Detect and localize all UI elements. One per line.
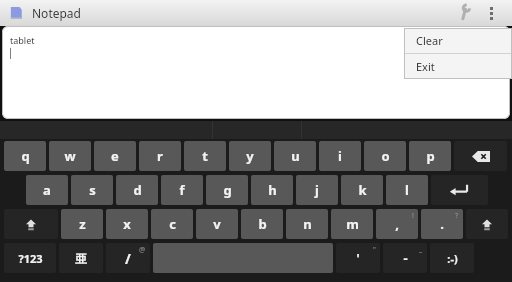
staticText: v: [213, 215, 221, 233]
staticText: n: [303, 215, 312, 233]
staticText: @: [139, 245, 146, 255]
button[interactable]: d: [116, 175, 158, 205]
button[interactable]: :-): [430, 243, 474, 273]
staticText: r: [157, 147, 163, 165]
staticText: ': [356, 250, 360, 266]
staticText: :-): [447, 251, 458, 266]
button[interactable]: p: [409, 141, 451, 171]
staticText: tablet: [10, 34, 35, 46]
staticText: 亜: [75, 251, 87, 266]
staticText: y: [246, 147, 254, 165]
staticText: a: [43, 181, 51, 199]
staticText: /: [125, 249, 131, 268]
button[interactable]: Settings: [452, 0, 478, 26]
staticText: z: [79, 215, 86, 233]
staticText: d: [133, 181, 142, 199]
button[interactable]: tablet: [2, 26, 510, 119]
staticText: b: [258, 215, 267, 233]
button[interactable]: ?123: [4, 243, 56, 273]
button[interactable]: Shift: [466, 209, 508, 239]
button[interactable]: ': [336, 243, 380, 273]
button[interactable]: f: [161, 175, 203, 205]
button[interactable]: k: [341, 175, 383, 205]
staticText: e: [111, 147, 119, 165]
button[interactable]: x: [106, 209, 148, 239]
button[interactable]: Enter: [431, 175, 488, 205]
staticText: h: [268, 181, 277, 199]
staticText: ,: [395, 215, 399, 233]
button[interactable]: -: [383, 243, 427, 273]
button[interactable]: v: [196, 209, 238, 239]
staticText: _: [419, 245, 423, 255]
staticText: x: [123, 215, 131, 233]
staticText: -: [403, 249, 408, 267]
staticText: t: [202, 147, 208, 165]
staticText: ?123: [18, 251, 43, 266]
button[interactable]: j: [296, 175, 338, 205]
staticText: m: [346, 215, 359, 233]
staticText: j: [315, 181, 319, 199]
button[interactable]: u: [274, 141, 316, 171]
staticText: o: [381, 147, 390, 165]
button[interactable]: n: [286, 209, 328, 239]
staticText: k: [358, 181, 367, 199]
button[interactable]: q: [4, 141, 46, 171]
button[interactable]: b: [241, 209, 283, 239]
staticText: p: [426, 147, 435, 165]
staticText: !: [412, 211, 414, 221]
button[interactable]: /: [106, 243, 150, 273]
button[interactable]: o: [364, 141, 406, 171]
button[interactable]: g: [206, 175, 248, 205]
button[interactable]: z: [61, 209, 103, 239]
button[interactable]: Shift: [4, 209, 58, 239]
button[interactable]: Exit: [404, 54, 512, 79]
button[interactable]: More options: [478, 0, 504, 26]
staticText: ?: [455, 211, 459, 221]
button[interactable]: c: [151, 209, 193, 239]
button[interactable]: t: [184, 141, 226, 171]
staticText: .: [440, 215, 444, 233]
button[interactable]: w: [49, 141, 91, 171]
button[interactable]: Clear: [404, 28, 512, 53]
staticText: i: [338, 147, 342, 165]
button[interactable]: i: [319, 141, 361, 171]
button[interactable]: Input language: [59, 243, 103, 273]
staticText: s: [89, 181, 96, 199]
button[interactable]: m: [331, 209, 373, 239]
button[interactable]: s: [71, 175, 113, 205]
button[interactable]: h: [251, 175, 293, 205]
button[interactable]: a: [26, 175, 68, 205]
staticText: Exit: [416, 59, 435, 74]
staticText: Notepad: [32, 5, 81, 21]
button[interactable]: l: [386, 175, 428, 205]
staticText: l: [405, 181, 409, 199]
staticText: u: [291, 147, 300, 165]
button[interactable]: Backspace: [454, 141, 507, 171]
button[interactable]: .: [421, 209, 463, 239]
button[interactable]: y: [229, 141, 271, 171]
button[interactable]: ,: [376, 209, 418, 239]
button[interactable]: r: [139, 141, 181, 171]
staticText: Clear: [416, 33, 443, 48]
staticText: c: [169, 215, 176, 233]
staticText: ": [373, 245, 376, 255]
staticText: g: [223, 181, 232, 199]
staticText: w: [64, 147, 76, 165]
staticText: f: [179, 181, 185, 199]
button[interactable]: e: [94, 141, 136, 171]
staticText: q: [21, 147, 30, 165]
